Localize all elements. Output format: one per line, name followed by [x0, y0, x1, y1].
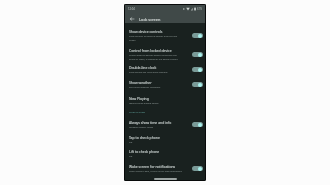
staticText: Identify songs playing nearby [129, 102, 159, 105]
button[interactable]: Toggle [192, 33, 203, 38]
staticText: Wake screen for notifications [129, 164, 176, 169]
staticText: Show double-line clock when available [129, 71, 168, 74]
button[interactable]: Now Playing [124, 93, 206, 108]
staticText: Now Playing [129, 96, 149, 101]
button[interactable]: Lift to check phone [124, 146, 206, 161]
button[interactable]: Toggle [192, 166, 203, 171]
button[interactable]: Back [126, 14, 137, 24]
staticText: Show weather [129, 80, 152, 85]
button[interactable]: Toggle [192, 122, 203, 127]
staticText: Off [129, 155, 133, 158]
button[interactable]: Always show time and info [124, 117, 206, 132]
staticText: Lock screen [139, 17, 161, 22]
staticText: Always show time and info [129, 120, 172, 125]
staticText: Control external devices without unlocki… [129, 54, 181, 60]
staticText: Off [129, 141, 133, 144]
staticText: 12:04 [128, 7, 135, 11]
staticText: Tap to check phone [129, 135, 160, 140]
button[interactable]: Tap to check phone [124, 132, 206, 147]
button[interactable]: Toggle [192, 52, 203, 57]
button[interactable]: Toggle [192, 67, 203, 72]
staticText: Double-line clock [129, 65, 157, 70]
staticText: Show controls for external devices from … [129, 35, 181, 41]
button[interactable]: Wake screen for notifications [124, 161, 206, 176]
staticText: See current weather conditions [129, 86, 161, 89]
button[interactable]: Show weather [124, 77, 206, 92]
button[interactable]: Show device controls [124, 26, 206, 44]
staticText: When to show [129, 110, 145, 113]
staticText: Control from locked device [129, 48, 172, 53]
staticText: Lift to check phone [129, 149, 160, 154]
staticText: Show device controls [129, 29, 163, 34]
staticText: 67% [197, 7, 203, 11]
button[interactable]: Control from locked device [124, 45, 206, 63]
staticText: When screen is dark, it turns on for new… [129, 170, 182, 173]
button[interactable]: Toggle [192, 82, 203, 87]
button[interactable]: Double-line clock [124, 62, 206, 77]
staticText: Increases battery usage [129, 126, 154, 129]
